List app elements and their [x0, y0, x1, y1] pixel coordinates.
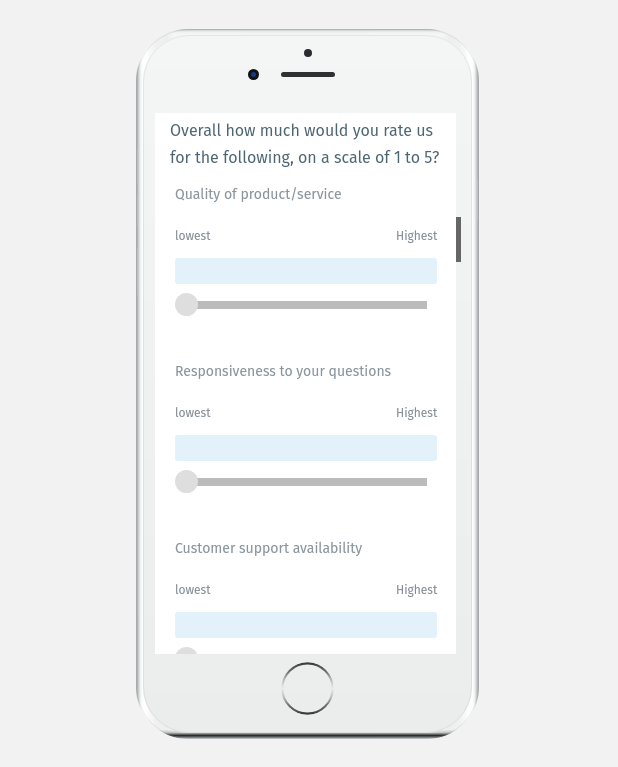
button[interactable]: Rating slider — [175, 646, 437, 654]
staticText: lowest — [175, 406, 211, 420]
staticText: Highest — [396, 229, 438, 243]
staticText: Responsiveness to your questions — [175, 363, 392, 380]
staticText: Highest — [396, 406, 438, 420]
staticText: Customer support availability — [175, 540, 363, 557]
button[interactable]: Rating slider — [175, 292, 437, 317]
staticText: Highest — [396, 583, 438, 597]
button[interactable]: Rating slider — [175, 469, 437, 494]
staticText: Overall how much would you rate us for t… — [170, 121, 440, 167]
staticText: lowest — [175, 229, 211, 243]
staticText: Quality of product/service — [175, 186, 342, 203]
button[interactable]: Home — [281, 662, 334, 715]
staticText: lowest — [175, 583, 211, 597]
